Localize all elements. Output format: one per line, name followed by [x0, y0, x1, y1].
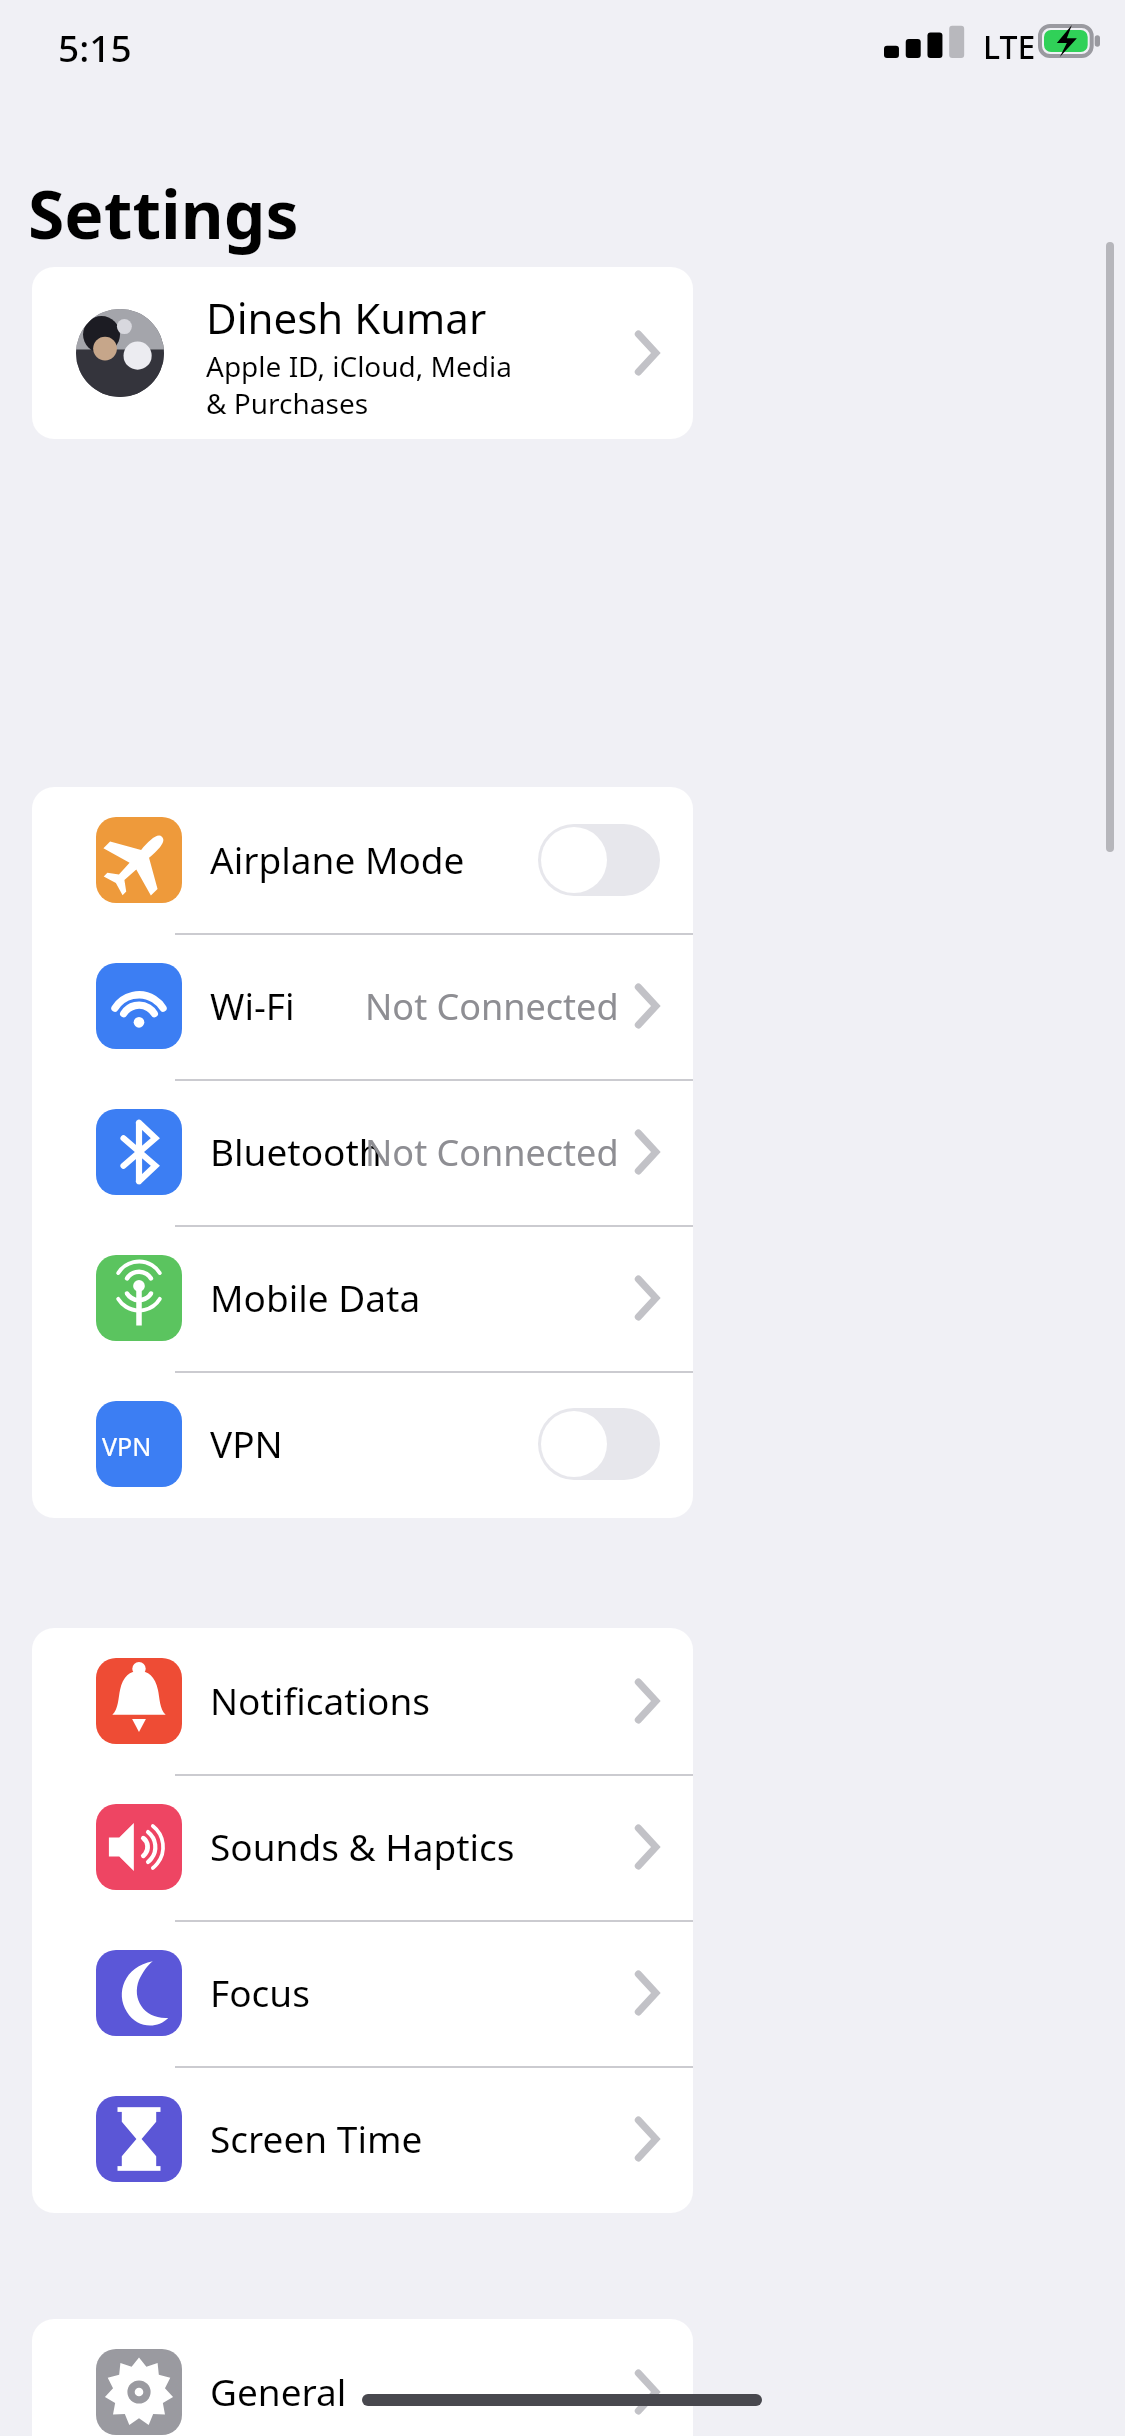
- button[interactable]: Airplane Mode: [32, 787, 693, 933]
- button[interactable]: Dinesh Kumar: [32, 267, 693, 439]
- button[interactable]: Screen Time: [32, 2066, 693, 2212]
- button[interactable]: VPN: [32, 1371, 693, 1517]
- staticText: Notifications: [210, 1675, 431, 1725]
- staticText: Not Connected: [365, 982, 619, 1031]
- staticText: Apple ID, iCloud, Media & Purchases: [206, 347, 512, 422]
- staticText: Not Connected: [365, 1128, 619, 1177]
- button[interactable]: General: [32, 2319, 693, 2436]
- button[interactable]: Airplane Mode toggle, off: [538, 824, 660, 896]
- button[interactable]: Mobile Data: [32, 1225, 693, 1371]
- button[interactable]: Sounds & Haptics: [32, 1774, 693, 1920]
- staticText: 5:15: [58, 22, 132, 72]
- staticText: Screen Time: [210, 2113, 423, 2163]
- button[interactable]: Wi-Fi: [32, 933, 693, 1079]
- staticText: Bluetooth: [210, 1126, 382, 1176]
- staticText: LTE: [983, 25, 1036, 69]
- staticText: VPN: [102, 1429, 152, 1463]
- staticText: Airplane Mode: [210, 834, 465, 884]
- staticText: Wi-Fi: [210, 980, 295, 1030]
- staticText: Dinesh Kumar: [206, 289, 487, 346]
- button[interactable]: Focus: [32, 1920, 693, 2066]
- staticText: General: [210, 2366, 347, 2416]
- staticText: Focus: [210, 1967, 310, 2017]
- staticText: Settings: [28, 168, 299, 258]
- staticText: Mobile Data: [210, 1272, 421, 1322]
- button[interactable]: VPN toggle, off: [538, 1408, 660, 1480]
- staticText: Sounds & Haptics: [210, 1821, 515, 1871]
- staticText: VPN: [210, 1418, 283, 1468]
- button[interactable]: Bluetooth: [32, 1079, 693, 1225]
- button[interactable]: Notifications: [32, 1628, 693, 1774]
